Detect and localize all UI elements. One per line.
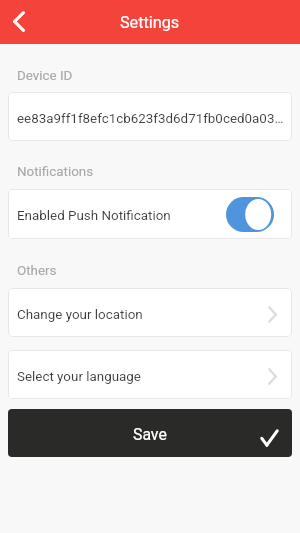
button[interactable]: Back — [0, 0, 42, 44]
staticText: Settings — [120, 13, 180, 32]
button[interactable]: Select your language — [8, 350, 292, 399]
staticText: Device ID — [17, 68, 73, 84]
staticText: Select your language — [17, 369, 141, 385]
staticText: Save — [133, 425, 167, 444]
button[interactable]: Enabled Push Notification — [8, 189, 292, 239]
staticText: Others — [17, 263, 57, 279]
staticText: ee83a9ff1f8efc1cb623f3d6d71fb0ced0a03… — [17, 111, 284, 127]
staticText: Change your location — [17, 307, 143, 323]
button[interactable]: Save — [8, 409, 292, 457]
button[interactable]: Change your location — [8, 288, 292, 337]
staticText: Notifications — [17, 164, 94, 180]
button[interactable]: Enable push notification — [226, 197, 274, 232]
staticText: Enabled Push Notification — [17, 208, 171, 224]
